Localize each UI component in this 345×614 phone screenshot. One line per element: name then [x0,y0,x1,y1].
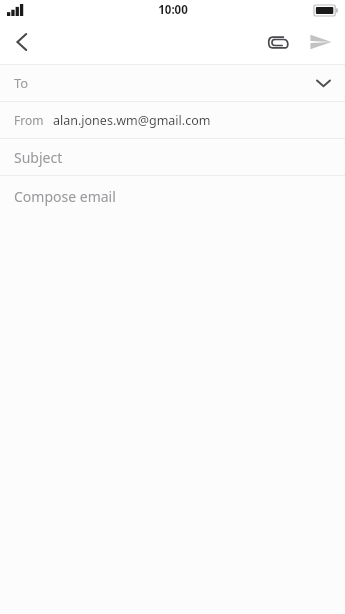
button[interactable]: Subject [0,139,345,175]
button[interactable]: To [0,65,345,101]
button[interactable]: Compose email [0,176,345,614]
staticText: 10:00 [158,2,188,18]
button[interactable]: From [0,102,345,138]
button[interactable]: Send [299,20,343,64]
staticText: From [14,112,44,128]
staticText: Subject [14,148,63,167]
staticText: To [14,74,29,92]
other: Show Cc and Bcc [305,65,341,101]
staticText: Compose email [14,187,116,206]
button[interactable]: Attach file [255,20,299,64]
staticText: alan.jones.wm@gmail.com [53,112,211,129]
button[interactable]: Back [0,20,44,64]
